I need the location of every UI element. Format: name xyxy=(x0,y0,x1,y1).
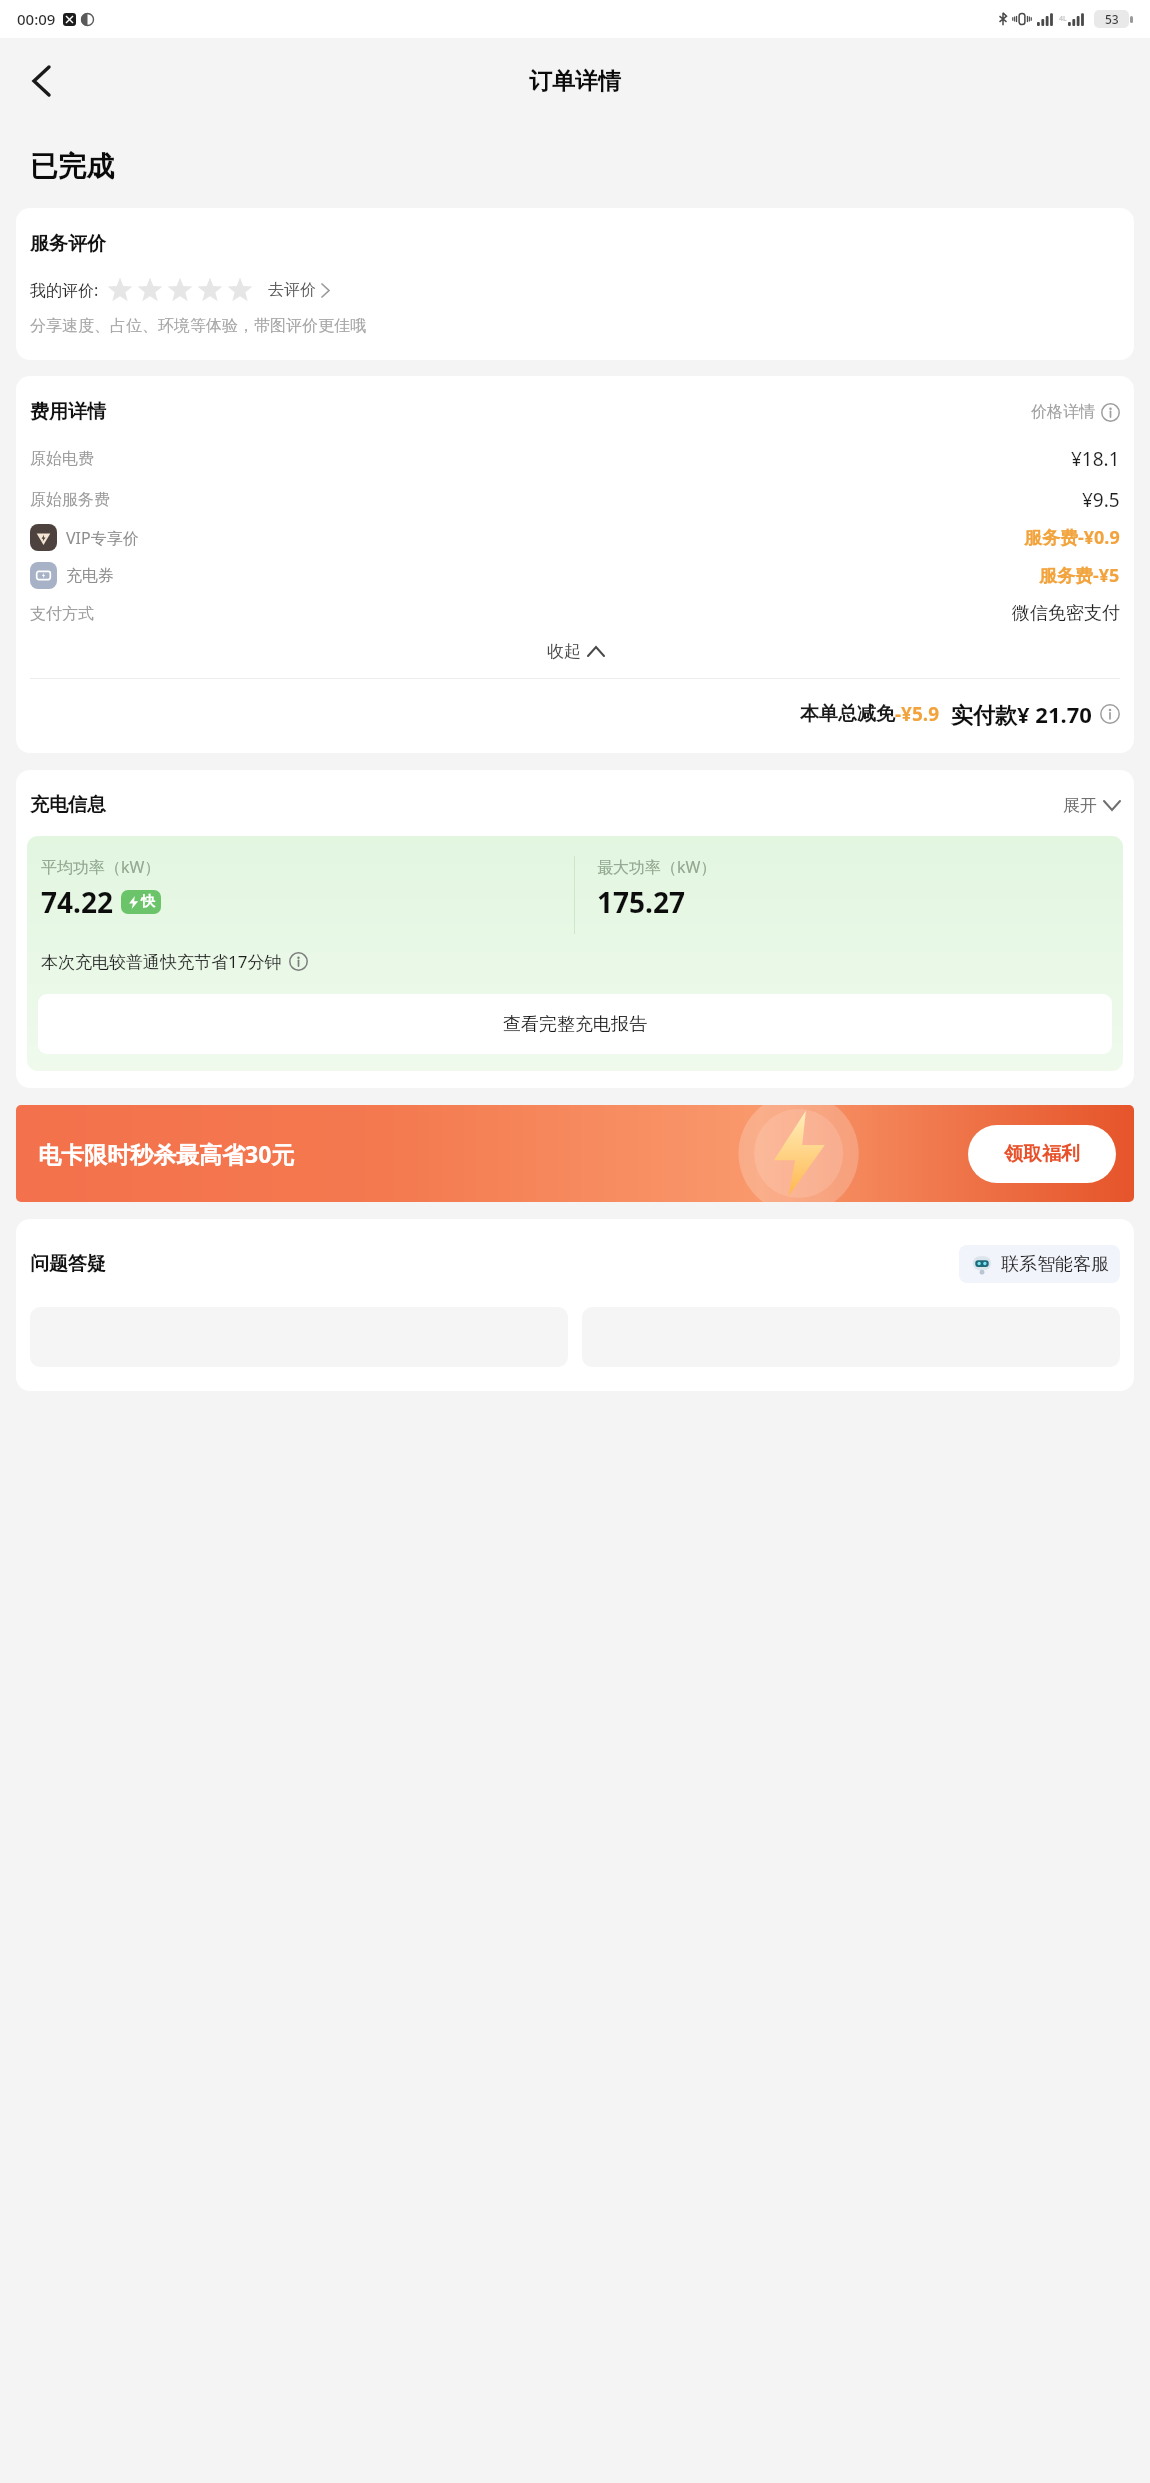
staticText: 00:09 xyxy=(17,9,56,29)
staticText: 查看完整充电报告 xyxy=(503,1013,647,1036)
staticText: 本单总减免 xyxy=(800,702,895,726)
staticText: 充电券 xyxy=(66,566,114,586)
staticText: 费用详情 xyxy=(30,400,106,424)
staticText: 去评价 xyxy=(268,280,316,300)
staticText: ¥18.1 xyxy=(1071,446,1120,472)
staticText: 最大功率（kW） xyxy=(597,856,717,878)
staticText: 微信免密支付 xyxy=(1012,602,1120,625)
staticText: 快 xyxy=(141,893,155,911)
button[interactable]: 价格详情 xyxy=(1031,402,1120,422)
button[interactable]: Back xyxy=(12,52,70,110)
staticText: 服务费-¥5 xyxy=(1039,563,1120,588)
staticText: 收起 xyxy=(547,641,581,662)
staticText: 我的评价: xyxy=(30,279,99,301)
staticText: VIP专享价 xyxy=(66,527,139,549)
button[interactable]: 展开 xyxy=(1063,795,1120,816)
staticText: 领取福利 xyxy=(1004,1142,1080,1166)
button[interactable]: 联系智能客服 xyxy=(959,1245,1120,1283)
staticText: 电卡限时秒杀最高省30元 xyxy=(38,1138,295,1169)
staticText: 175.27 xyxy=(597,883,685,921)
button[interactable]: 我的评价: xyxy=(30,276,1134,304)
staticText: 原始服务费 xyxy=(30,490,110,510)
staticText: 联系智能客服 xyxy=(1001,1253,1109,1276)
button[interactable]: 查看完整充电报告 xyxy=(38,994,1112,1054)
staticText: 价格详情 xyxy=(1031,402,1095,422)
staticText: 已完成 xyxy=(30,149,114,184)
staticText: 充电信息 xyxy=(30,793,106,817)
button[interactable]: 领取福利 xyxy=(968,1125,1116,1183)
staticText: 展开 xyxy=(1063,795,1097,816)
staticText: 服务费-¥0.9 xyxy=(1024,525,1120,550)
staticText: 问题答疑 xyxy=(30,1252,106,1276)
button[interactable]: 收起 xyxy=(16,641,1134,662)
staticText: 53 xyxy=(1105,11,1119,27)
staticText: 支付方式 xyxy=(30,604,94,624)
button[interactable]: 电卡限时秒杀最高省30元 xyxy=(16,1105,1134,1202)
staticText: 分享速度、占位、环境等体验，带图评价更佳哦 xyxy=(30,316,366,336)
staticText: 服务评价 xyxy=(30,232,106,256)
staticText: 实付款¥ 21.70 xyxy=(951,699,1092,729)
staticText: -¥5.9 xyxy=(895,701,940,727)
staticText: 原始电费 xyxy=(30,449,94,469)
staticText: 74.22 xyxy=(41,883,113,921)
staticText: 订单详情 xyxy=(529,67,621,96)
staticText: 4L xyxy=(1059,14,1067,24)
staticText: ¥9.5 xyxy=(1082,487,1120,513)
staticText: 本次充电较普通快充节省17分钟 xyxy=(41,950,282,973)
staticText: 平均功率（kW） xyxy=(41,856,161,878)
